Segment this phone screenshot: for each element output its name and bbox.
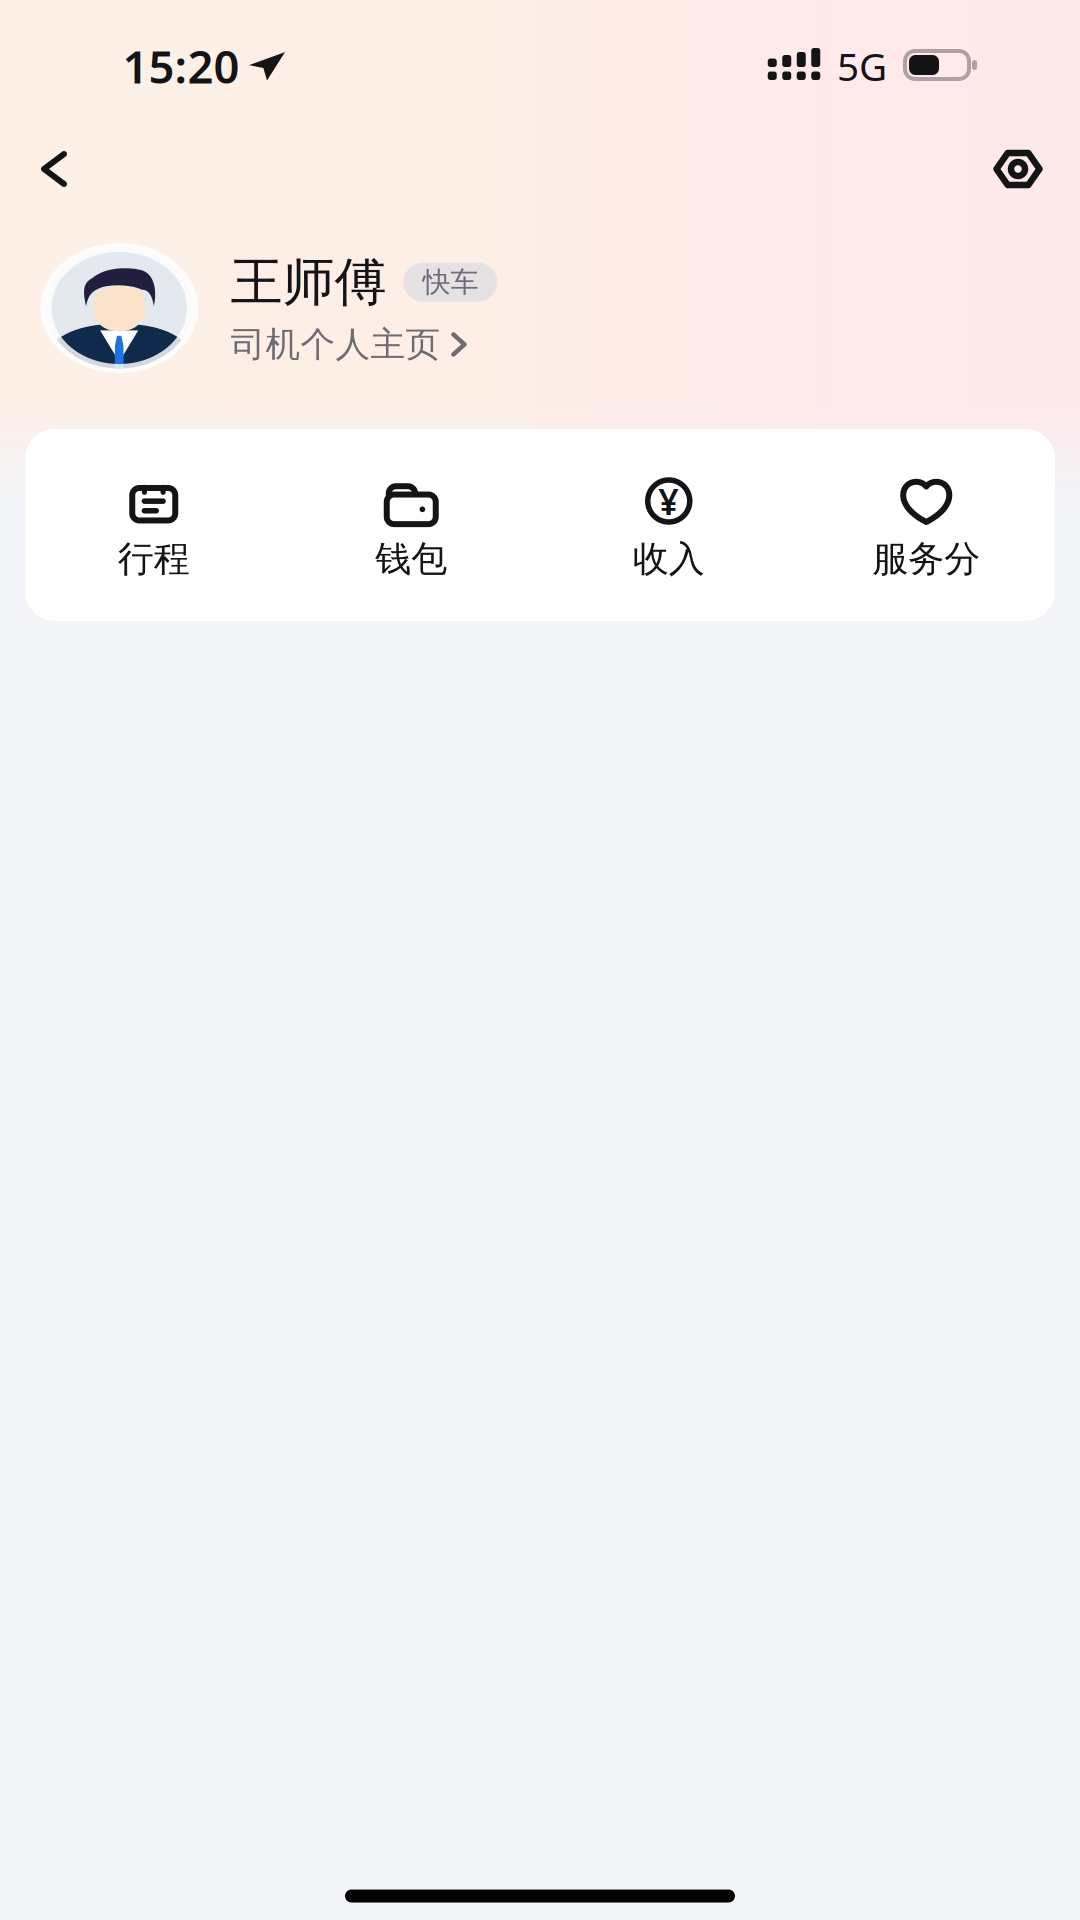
button[interactable]: 服务分 [797,429,1055,621]
button[interactable]: Settings [966,120,1070,218]
staticText: ¥ [658,477,679,525]
staticText: 王师傅 [230,250,386,314]
button[interactable]: 王师傅 [0,247,1080,368]
staticText: 钱包 [375,537,447,581]
button[interactable]: Back [14,124,94,214]
staticText: 司机个人主页 [230,323,440,366]
staticText: 5G [837,40,887,92]
button[interactable]: 钱包 [282,429,540,621]
staticText: 服务分 [872,537,980,581]
staticText: 收入 [633,537,705,581]
staticText: 15:20 [122,36,239,96]
button[interactable]: ¥ [540,429,797,621]
button[interactable]: 行程 [25,429,282,621]
staticText: 行程 [118,537,190,581]
staticText: 快车 [422,265,478,299]
